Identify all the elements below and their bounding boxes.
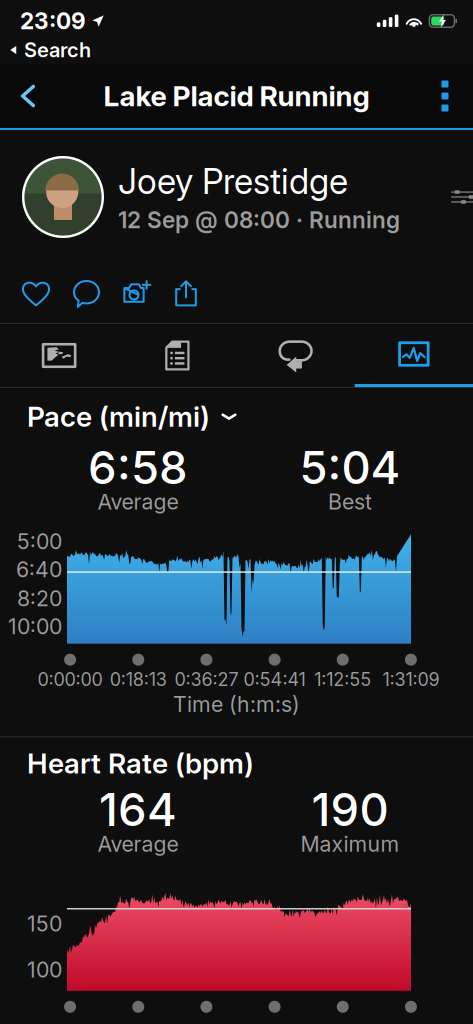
- staticText: 1:31:09: [382, 669, 439, 690]
- staticText: 100: [27, 957, 62, 983]
- button[interactable]: Pace (min/mi): [0, 388, 473, 436]
- staticText: 150: [27, 911, 62, 937]
- button[interactable]: Add photo: [111, 264, 161, 323]
- staticText: Lake Placid Running: [103, 79, 369, 113]
- staticText: 0:00:00: [38, 669, 103, 690]
- staticText: Time (h:m:s): [173, 691, 300, 717]
- button[interactable]: Map: [0, 324, 118, 387]
- staticText: 12 Sep @ 08:00 · Running: [118, 206, 400, 234]
- button[interactable]: Back: [0, 66, 56, 126]
- button[interactable]: Laps: [236, 324, 355, 387]
- staticText: 0:36:27: [174, 669, 238, 690]
- staticText: 23:09: [20, 7, 86, 35]
- staticText: 164: [99, 782, 177, 837]
- button[interactable]: Comment: [61, 264, 111, 323]
- button[interactable]: Like: [11, 264, 61, 323]
- button[interactable]: Charts: [355, 324, 473, 387]
- staticText: Best: [328, 489, 372, 515]
- staticText: 10:00: [8, 614, 62, 639]
- staticText: Maximum: [300, 831, 399, 857]
- button[interactable]: More options: [417, 66, 473, 126]
- button[interactable]: Share: [161, 264, 211, 323]
- staticText: 5:00: [17, 529, 62, 554]
- staticText: Search: [24, 38, 91, 62]
- staticText: 8:20: [17, 586, 62, 611]
- staticText: 6:58: [88, 440, 188, 495]
- staticText: Heart Rate (bpm): [27, 746, 254, 780]
- button[interactable]: Details: [118, 324, 236, 387]
- staticText: Average: [97, 831, 178, 857]
- staticText: 1:12:55: [314, 669, 371, 690]
- staticText: Average: [97, 489, 178, 515]
- staticText: 5:04: [299, 440, 400, 495]
- staticText: Joey Prestidge: [118, 160, 348, 202]
- staticText: 6:40: [16, 557, 62, 582]
- staticText: 0:18:13: [110, 669, 167, 690]
- staticText: Pace (min/mi): [27, 400, 210, 433]
- staticText: 190: [311, 782, 388, 837]
- staticText: 0:54:41: [244, 669, 306, 690]
